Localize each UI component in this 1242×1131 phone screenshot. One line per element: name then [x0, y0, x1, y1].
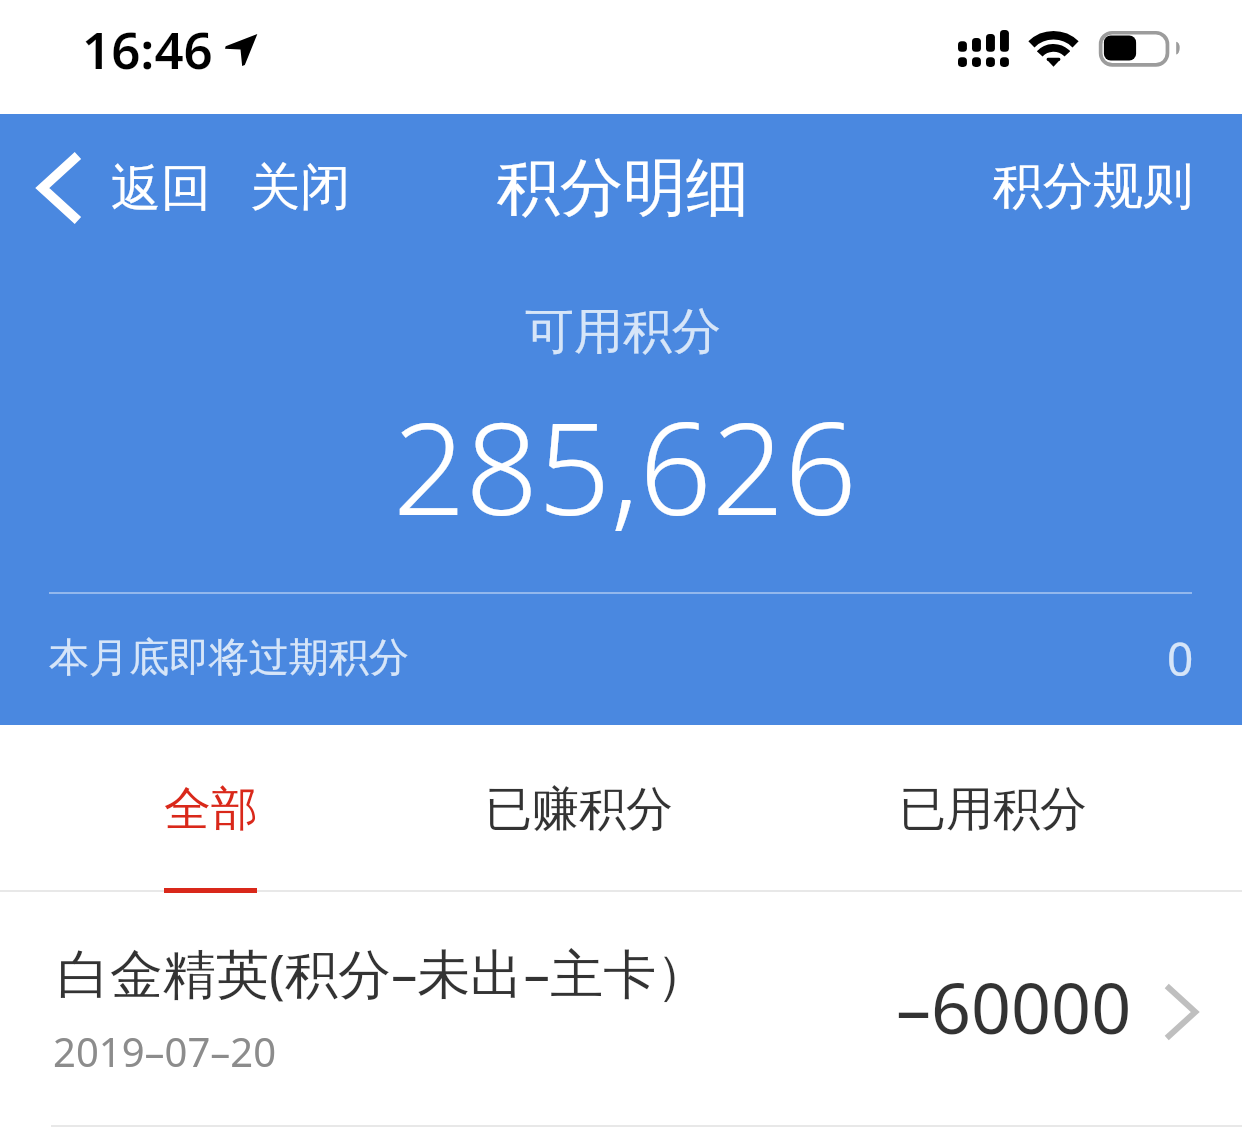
button[interactable]: 关闭	[250, 156, 350, 219]
button[interactable]: 已赚积分	[485, 780, 673, 839]
staticText: 285,626	[393, 379, 857, 552]
staticText: 2019–07–20	[53, 1024, 277, 1078]
staticText: 积分明细	[497, 148, 749, 227]
button[interactable]	[0, 893, 1242, 1126]
staticText: 返回	[111, 157, 211, 220]
button[interactable]: 全部	[164, 780, 258, 839]
staticText: 本月底即将过期积分	[49, 632, 409, 682]
button[interactable]: Back	[37, 148, 211, 228]
other: Back	[37, 151, 81, 225]
other: Details	[1164, 984, 1198, 1040]
staticText: 0	[1167, 627, 1194, 690]
button[interactable]: 已用积分	[899, 780, 1087, 839]
staticText: 白金精英(积分–未出–主卡）	[57, 936, 709, 1008]
button[interactable]: 积分规则	[993, 155, 1193, 218]
staticText: 16:46	[82, 14, 213, 83]
staticText: –60000	[896, 959, 1132, 1054]
staticText: 可用积分	[525, 301, 721, 363]
